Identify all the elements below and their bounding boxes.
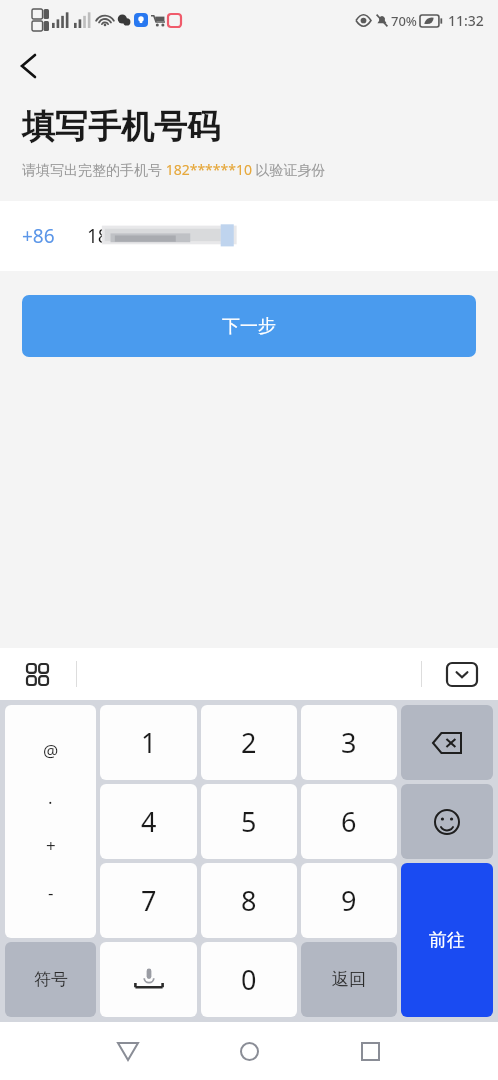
button[interactable]: 6 <box>301 784 397 859</box>
button[interactable]: Back <box>6 44 50 88</box>
button[interactable]: Home <box>222 1024 276 1078</box>
button[interactable]: 9 <box>301 863 397 938</box>
button[interactable]: 下一步 <box>22 295 476 357</box>
staticText: 8 <box>241 882 257 919</box>
staticText: 填写手机号码 <box>22 106 220 148</box>
button[interactable]: Recent apps <box>343 1024 397 1078</box>
button[interactable]: 2 <box>201 705 297 780</box>
button[interactable]: 5 <box>201 784 297 859</box>
staticText: @ <box>43 739 59 762</box>
staticText: 7 <box>141 882 157 919</box>
button[interactable]: 符号 <box>5 942 96 1017</box>
staticText: 4 <box>141 803 157 840</box>
button[interactable]: Keyboard options <box>16 653 58 695</box>
button[interactable]: 7 <box>100 863 197 938</box>
staticText: 符号 <box>34 969 68 990</box>
staticText: 返回 <box>332 969 366 990</box>
button[interactable]: Backspace <box>401 705 493 780</box>
staticText: 9 <box>341 882 357 919</box>
button[interactable]: 3 <box>301 705 397 780</box>
button[interactable]: 0 <box>201 942 297 1017</box>
staticText: 2 <box>241 724 257 761</box>
staticText: . <box>48 786 53 809</box>
staticText: 请填写出完整的手机号 182******10 以验证身份 <box>22 160 326 179</box>
button[interactable]: +86 <box>22 201 476 271</box>
button[interactable]: 前往 <box>401 863 493 1017</box>
staticText: 1 <box>141 724 157 761</box>
staticText: 18 <box>87 223 109 249</box>
staticText: 3 <box>341 724 357 761</box>
staticText: 11:32 <box>448 11 484 30</box>
button[interactable]: 4 <box>100 784 197 859</box>
button[interactable]: Voice input <box>100 942 197 1017</box>
button[interactable]: Hide keyboard <box>440 652 484 696</box>
button[interactable]: Back <box>101 1024 155 1078</box>
staticText: + <box>46 834 56 857</box>
button[interactable]: 1 <box>100 705 197 780</box>
staticText: 6 <box>341 803 357 840</box>
staticText: 5 <box>241 803 257 840</box>
button[interactable]: Emoji <box>401 784 493 859</box>
staticText: 下一步 <box>222 315 276 338</box>
button[interactable]: 返回 <box>301 942 397 1017</box>
staticText: 0 <box>241 961 257 998</box>
staticText: 前往 <box>429 929 465 952</box>
button[interactable]: @ <box>5 705 96 938</box>
staticText: 70% <box>391 12 417 30</box>
staticText: - <box>48 881 54 904</box>
button[interactable]: 8 <box>201 863 297 938</box>
staticText: +86 <box>22 223 55 249</box>
